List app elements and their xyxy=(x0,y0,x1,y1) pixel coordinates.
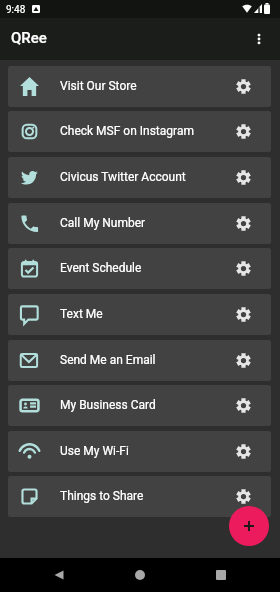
staticText: Visit Our Store xyxy=(60,79,137,93)
staticText: Check MSF on Instagram xyxy=(60,124,194,138)
button[interactable]: Text Me xyxy=(8,294,271,335)
button[interactable]: Check MSF on Instagram xyxy=(8,111,271,152)
button[interactable]: Settings xyxy=(215,157,271,198)
staticText: Civicus Twitter Account xyxy=(60,170,186,184)
button[interactable]: Civicus Twitter Account xyxy=(8,157,271,198)
button[interactable]: Back xyxy=(42,558,76,592)
staticText: Event Schedule xyxy=(60,261,142,275)
staticText: Use My Wi-Fi xyxy=(60,444,129,458)
button[interactable]: Recents xyxy=(204,558,238,592)
staticText: QRee xyxy=(11,29,47,47)
button[interactable]: Things to Share xyxy=(8,476,271,517)
staticText: My Business Card xyxy=(60,398,156,412)
button[interactable]: Settings xyxy=(215,203,271,244)
button[interactable]: Home xyxy=(123,558,157,592)
button[interactable]: Settings xyxy=(215,66,271,107)
button[interactable]: Settings xyxy=(215,385,271,426)
button[interactable]: Settings xyxy=(215,111,271,152)
staticText: Text Me xyxy=(60,307,103,321)
staticText: Call My Number xyxy=(60,216,146,230)
button[interactable]: Visit Our Store xyxy=(8,66,271,107)
staticText: 9:48 xyxy=(6,4,26,16)
button[interactable]: Use My Wi-Fi xyxy=(8,431,271,472)
button[interactable]: My Business Card xyxy=(8,385,271,426)
button[interactable]: Settings xyxy=(215,476,271,517)
staticText: Things to Share xyxy=(60,489,144,503)
button[interactable]: More options xyxy=(240,20,278,58)
button[interactable]: Settings xyxy=(215,340,271,381)
button[interactable]: Settings xyxy=(215,294,271,335)
button[interactable]: Settings xyxy=(215,431,271,472)
button[interactable]: Settings xyxy=(215,248,271,289)
button[interactable]: Call My Number xyxy=(8,203,271,244)
staticText: Send Me an Email xyxy=(60,353,156,367)
button[interactable]: Event Schedule xyxy=(8,248,271,289)
button[interactable]: Add xyxy=(229,506,269,546)
button[interactable]: Send Me an Email xyxy=(8,340,271,381)
